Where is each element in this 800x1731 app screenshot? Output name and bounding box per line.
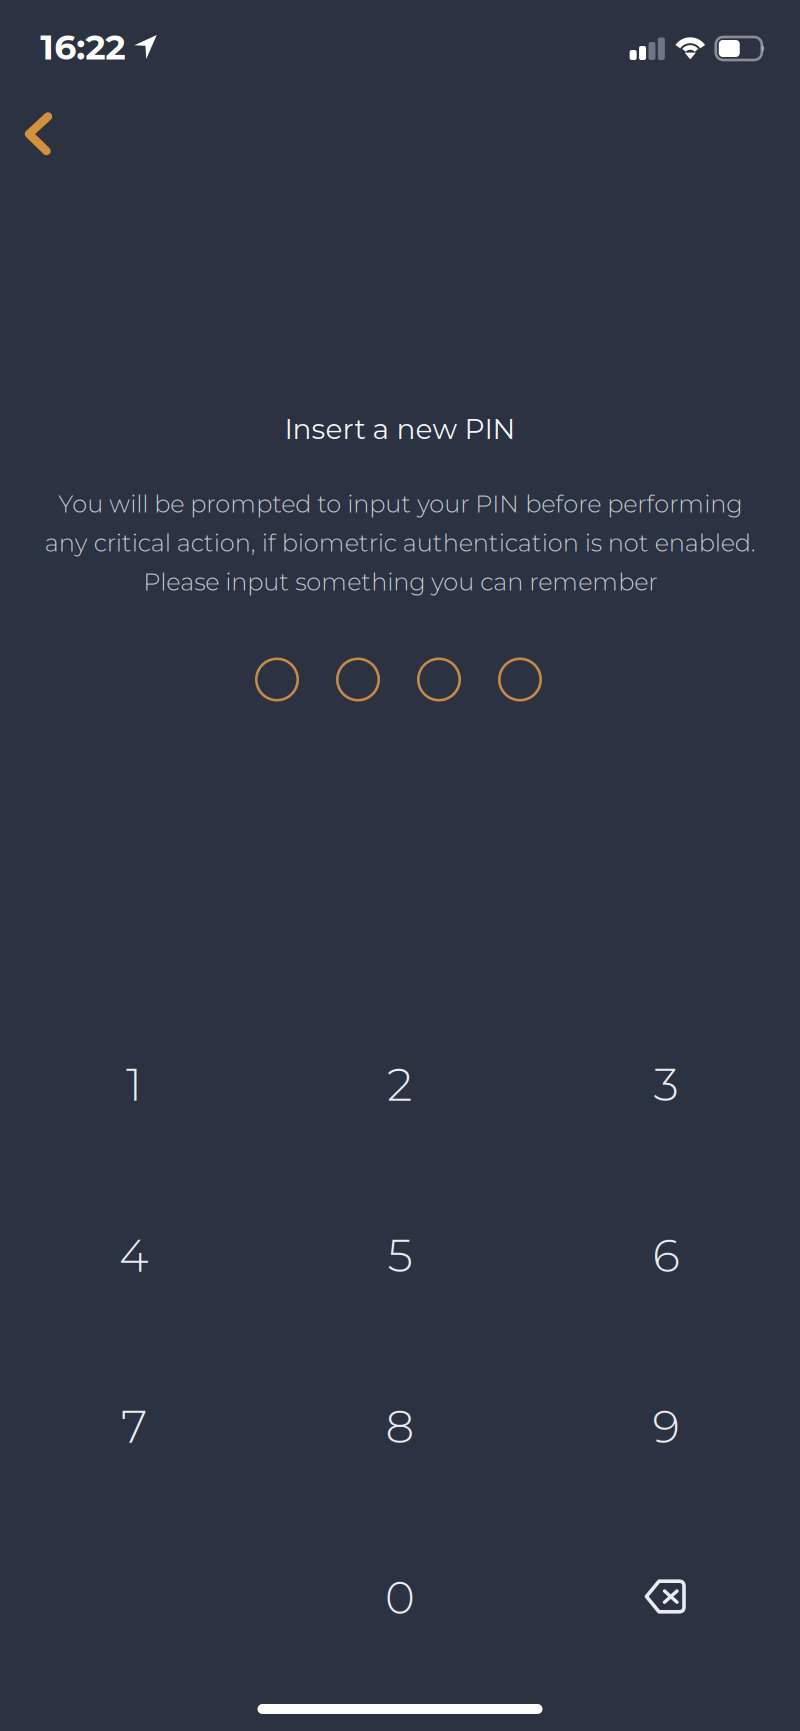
staticText: Please input something you can remember	[143, 567, 657, 597]
staticText: You will be prompted to input your PIN b…	[58, 489, 742, 519]
staticText: 0	[385, 1570, 415, 1625]
button[interactable]: 2	[267, 999, 533, 1170]
button[interactable]: 6	[533, 1170, 799, 1341]
button[interactable]: Delete	[533, 1512, 799, 1683]
button[interactable]: 5	[267, 1170, 533, 1341]
button[interactable]: 1	[1, 999, 267, 1170]
staticText: 5	[387, 1228, 412, 1283]
staticText: 2	[387, 1057, 413, 1112]
staticText: 4	[119, 1228, 149, 1283]
staticText: 1	[126, 1057, 142, 1112]
staticText: 16:22	[40, 26, 125, 68]
staticText: 9	[652, 1399, 679, 1454]
staticText: 6	[652, 1228, 679, 1283]
button[interactable]: 8	[267, 1341, 533, 1512]
button[interactable]: 4	[1, 1170, 267, 1341]
staticText: 7	[121, 1399, 147, 1454]
button[interactable]: Back	[0, 91, 81, 177]
staticText: any critical action, if biometric authen…	[44, 528, 755, 558]
button[interactable]: 9	[533, 1341, 799, 1512]
staticText: Insert a new PIN	[284, 412, 515, 446]
button[interactable]: 3	[533, 999, 799, 1170]
staticText: 8	[385, 1399, 414, 1454]
staticText: 3	[653, 1057, 678, 1112]
button[interactable]: 7	[1, 1341, 267, 1512]
button[interactable]: 0	[267, 1512, 533, 1683]
